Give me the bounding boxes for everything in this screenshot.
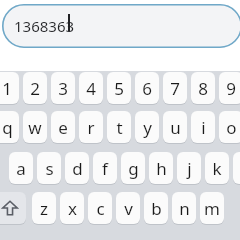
button[interactable]: m: [200, 192, 224, 224]
staticText: i: [201, 116, 206, 139]
staticText: 2: [30, 77, 40, 100]
button[interactable]: g: [121, 152, 145, 184]
staticText: 8: [198, 77, 208, 100]
button[interactable]: q: [0, 111, 19, 143]
button[interactable]: y: [135, 111, 159, 143]
staticText: w: [28, 116, 42, 139]
staticText: t: [116, 116, 123, 139]
button[interactable]: i: [191, 111, 215, 143]
button[interactable]: t: [107, 111, 131, 143]
button[interactable]: 7: [163, 72, 187, 104]
staticText: a: [16, 157, 26, 180]
staticText: 3: [58, 77, 68, 100]
button[interactable]: 2: [23, 72, 47, 104]
button[interactable]: [2, 4, 240, 48]
staticText: e: [58, 116, 68, 139]
staticText: k: [212, 157, 222, 180]
staticText: y: [143, 116, 152, 139]
button[interactable]: 3: [51, 72, 75, 104]
button[interactable]: x: [60, 192, 84, 224]
button[interactable]: f: [93, 152, 117, 184]
button[interactable]: 5: [107, 72, 131, 104]
staticText: n: [179, 197, 190, 220]
button[interactable]: 8: [191, 72, 215, 104]
staticText: j: [187, 157, 192, 180]
button[interactable]: e: [51, 111, 75, 143]
staticText: 1368363: [14, 16, 75, 36]
button[interactable]: w: [23, 111, 47, 143]
staticText: 9: [226, 77, 236, 100]
button[interactable]: Shift: [0, 192, 26, 224]
button[interactable]: b: [144, 192, 168, 224]
button[interactable]: z: [32, 192, 56, 224]
button[interactable]: k: [205, 152, 229, 184]
staticText: b: [151, 197, 162, 220]
button[interactable]: l: [233, 152, 240, 184]
staticText: 1: [2, 77, 12, 100]
staticText: 6: [142, 77, 152, 100]
staticText: o: [226, 116, 237, 139]
staticText: z: [40, 197, 48, 220]
button[interactable]: r: [79, 111, 103, 143]
staticText: q: [2, 116, 13, 139]
staticText: 7: [170, 77, 180, 100]
button[interactable]: v: [116, 192, 140, 224]
button[interactable]: c: [88, 192, 112, 224]
staticText: c: [96, 197, 105, 220]
button[interactable]: 4: [79, 72, 103, 104]
button[interactable]: d: [65, 152, 89, 184]
staticText: h: [156, 157, 167, 180]
staticText: u: [170, 116, 181, 139]
staticText: 5: [114, 77, 124, 100]
button[interactable]: j: [177, 152, 201, 184]
staticText: d: [72, 157, 83, 180]
button[interactable]: h: [149, 152, 173, 184]
button[interactable]: u: [163, 111, 187, 143]
button[interactable]: 1: [0, 72, 19, 104]
staticText: x: [68, 197, 77, 220]
button[interactable]: n: [172, 192, 196, 224]
button[interactable]: o: [219, 111, 240, 143]
button[interactable]: 9: [219, 72, 240, 104]
staticText: 4: [86, 77, 96, 100]
staticText: s: [45, 157, 54, 180]
button[interactable]: 6: [135, 72, 159, 104]
staticText: v: [124, 197, 133, 220]
button[interactable]: s: [37, 152, 61, 184]
staticText: r: [87, 116, 95, 139]
staticText: f: [102, 157, 108, 180]
staticText: m: [204, 197, 220, 220]
staticText: g: [128, 157, 139, 180]
button[interactable]: a: [9, 152, 33, 184]
